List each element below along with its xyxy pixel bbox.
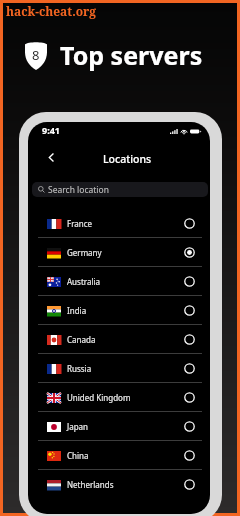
staticText: 9:41	[42, 124, 60, 136]
button[interactable]: France	[28, 209, 210, 238]
button[interactable]: Netherlands	[28, 470, 210, 499]
staticText: France	[67, 218, 93, 229]
button[interactable]: Back	[42, 148, 60, 166]
staticText: Netherlands	[67, 479, 114, 490]
staticText: Japan	[67, 421, 89, 432]
staticText: Russia	[67, 363, 92, 374]
button[interactable]: China	[28, 441, 210, 470]
button[interactable]: Search location	[32, 182, 208, 197]
staticText: Locations	[103, 152, 152, 166]
button[interactable]: Unided Kingdom	[28, 383, 210, 412]
button[interactable]: India	[28, 296, 210, 325]
button[interactable]: Germany	[28, 238, 210, 267]
staticText: Search location	[48, 184, 109, 196]
staticText: Germany	[67, 247, 102, 258]
staticText: 8	[32, 46, 40, 64]
staticText: Canada	[67, 334, 96, 345]
button[interactable]: Canada	[28, 325, 210, 354]
button[interactable]: Australia	[28, 267, 210, 296]
staticText: Top servers	[60, 38, 203, 72]
staticText: Australia	[67, 276, 101, 287]
staticText: hack-cheat.org	[6, 3, 97, 19]
button[interactable]: Japan	[28, 412, 210, 441]
button[interactable]: Russia	[28, 354, 210, 383]
staticText: Unided Kingdom	[67, 392, 131, 403]
staticText: India	[67, 305, 87, 316]
staticText: China	[67, 450, 89, 461]
